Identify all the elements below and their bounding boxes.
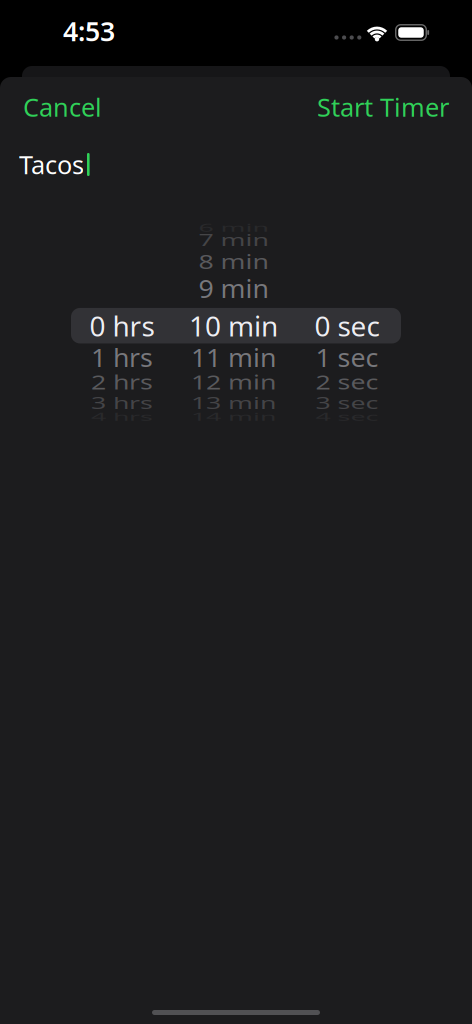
staticText: 10 min — [189, 307, 278, 344]
button[interactable]: Tacos — [0, 148, 472, 181]
staticText: 6 min — [198, 210, 268, 245]
staticText: 8 min — [198, 243, 268, 279]
staticText: 3 sec — [315, 385, 378, 420]
staticText: Tacos — [19, 148, 84, 181]
button[interactable]: Start Timer — [317, 90, 449, 124]
staticText: 7 min — [198, 222, 268, 257]
button[interactable]: 0 sec — [292, 308, 402, 343]
staticText: 2 hrs — [91, 364, 153, 399]
staticText: Cancel — [23, 90, 102, 124]
staticText: 12 min — [191, 364, 276, 399]
staticText: 1 hrs — [91, 340, 153, 375]
button[interactable]: 10 min — [178, 308, 288, 343]
button[interactable]: 0 hrs — [67, 308, 177, 343]
staticText: 1 sec — [315, 340, 378, 375]
staticText: 0 sec — [314, 307, 379, 344]
staticText: 11 min — [191, 340, 276, 375]
staticText: 4 sec — [315, 399, 378, 434]
staticText: 0 hrs — [89, 307, 154, 344]
staticText: 13 min — [191, 385, 276, 420]
staticText: Start Timer — [317, 90, 449, 124]
staticText: 2 sec — [315, 364, 378, 399]
staticText: 14 min — [191, 399, 276, 434]
staticText: 3 hrs — [91, 385, 153, 420]
button[interactable]: Cancel — [23, 90, 102, 124]
staticText: 9 min — [198, 271, 268, 306]
staticText: 4:53 — [63, 13, 115, 49]
staticText: 4 hrs — [91, 399, 153, 434]
